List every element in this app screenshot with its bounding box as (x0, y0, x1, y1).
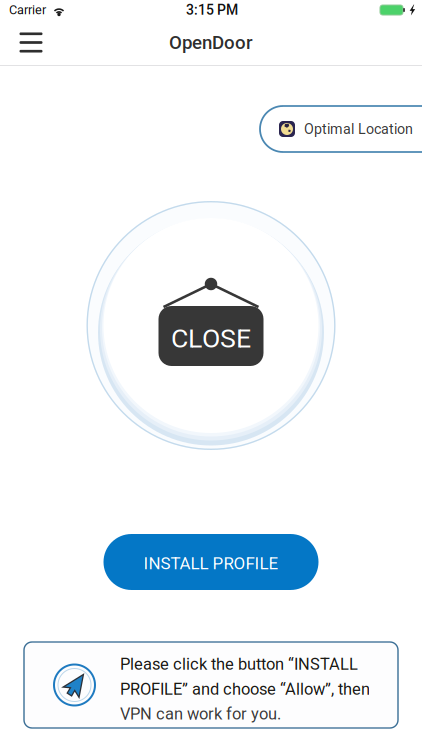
staticText: Optimal Location (304, 121, 413, 137)
button[interactable]: Optimal Location (260, 106, 422, 152)
staticText: 3:15 PM (186, 2, 238, 18)
staticText: CLOSE (171, 323, 251, 354)
button[interactable]: Menu (9, 20, 53, 64)
staticText: Please click the button “INSTALL (120, 655, 358, 674)
staticText: OpenDoor (169, 32, 253, 53)
button[interactable]: INSTALL PROFILE (103, 534, 318, 590)
staticText: VPN can work for you. (120, 704, 281, 723)
staticText: Carrier (9, 3, 46, 17)
staticText: PROFILE” and choose “Allow”, then (120, 679, 370, 699)
staticText: INSTALL PROFILE (143, 554, 278, 573)
